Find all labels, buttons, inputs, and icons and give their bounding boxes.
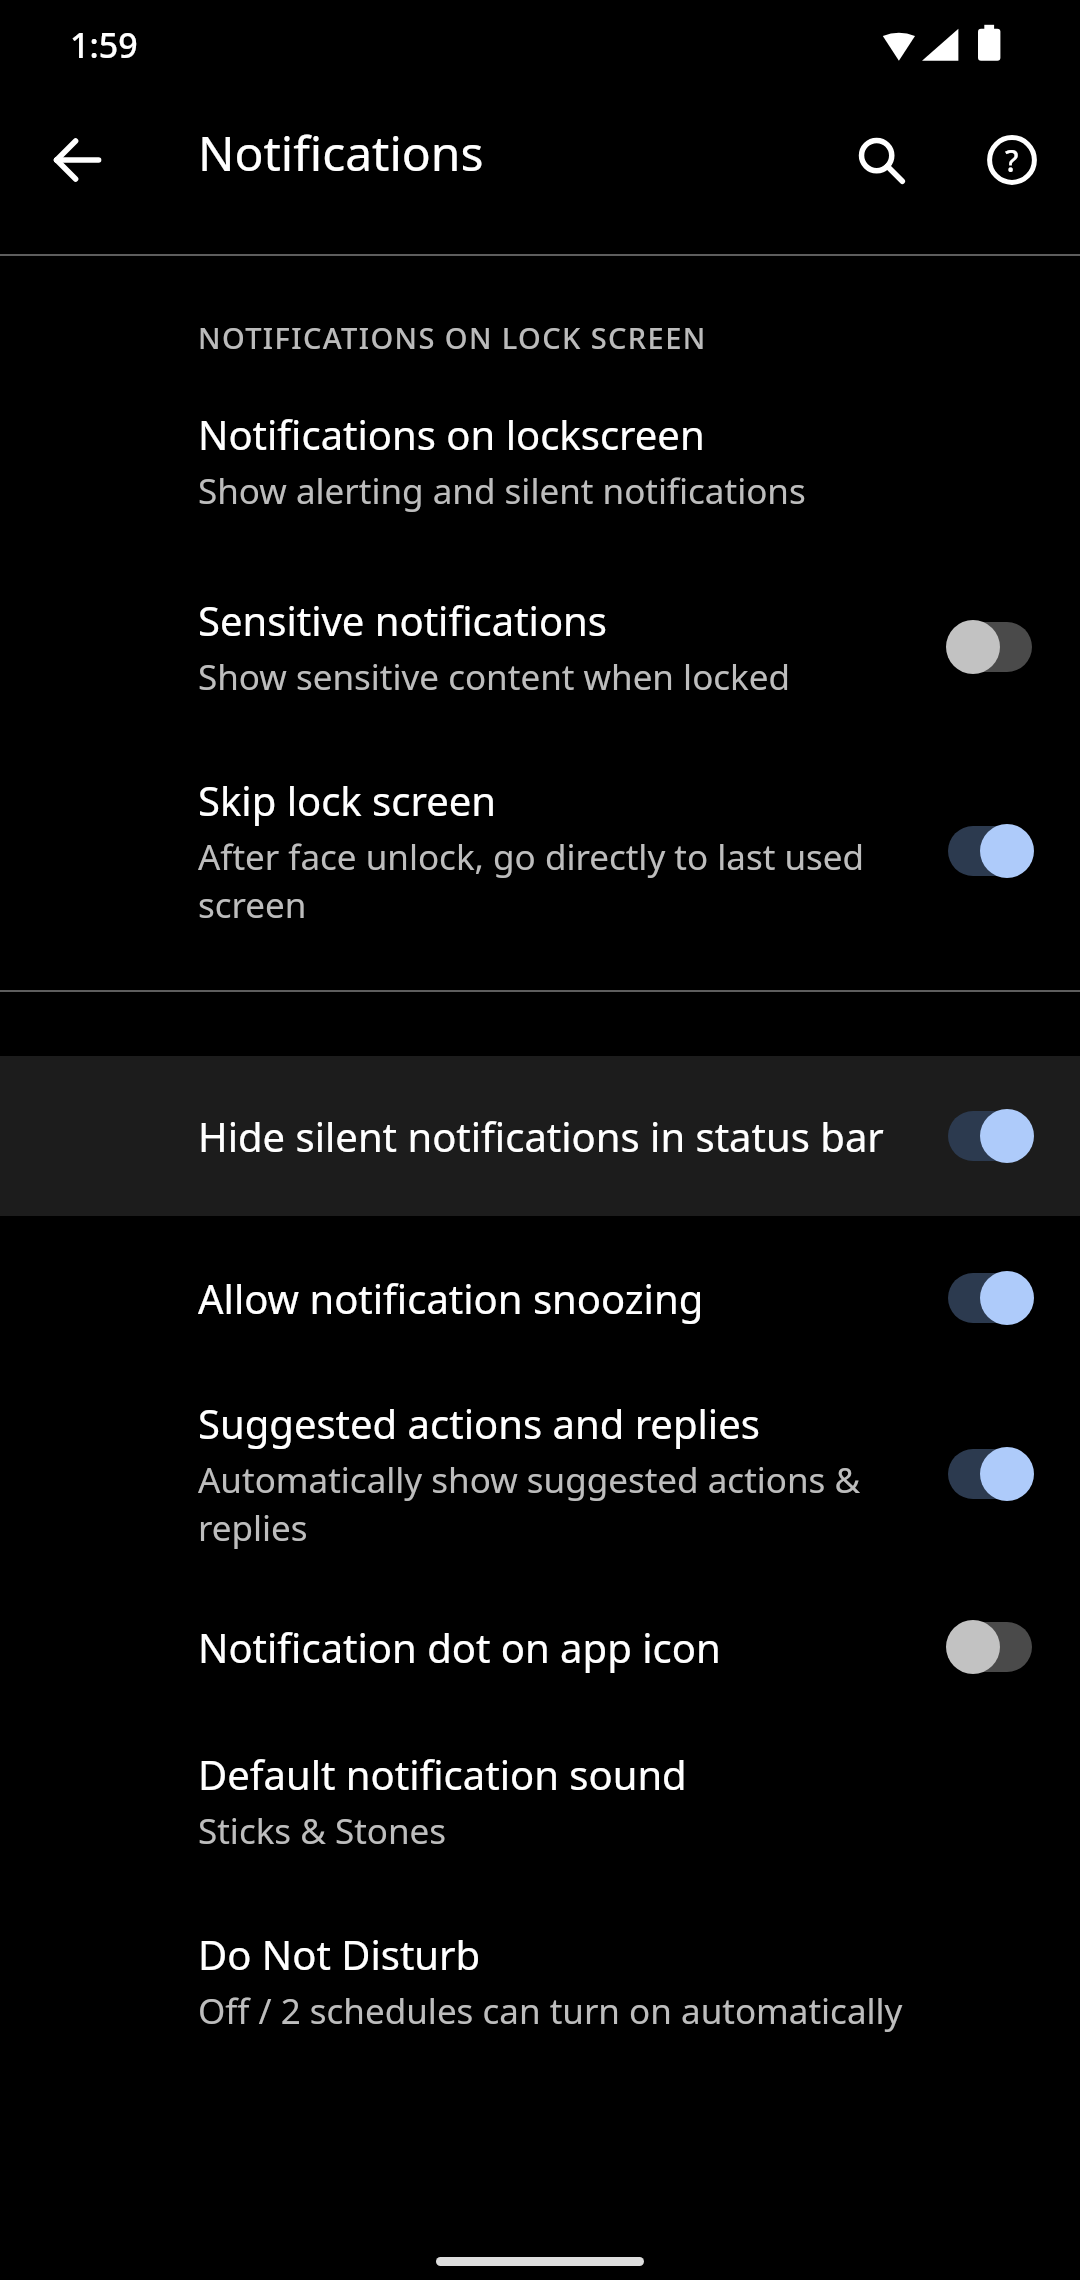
staticText: Allow notification snoozing: [198, 1271, 704, 1325]
staticText: NOTIFICATIONS ON LOCK SCREEN: [198, 318, 707, 357]
button[interactable]: Suggested actions and replies: [0, 1358, 1080, 1551]
staticText: 1:59: [70, 22, 138, 68]
staticText: Default notification sound: [198, 1747, 687, 1801]
button[interactable]: Do Not Disturb: [0, 1927, 1080, 2035]
staticText: Notification dot on app icon: [198, 1620, 721, 1674]
button[interactable]: Notifications on lockscreen: [0, 407, 1080, 515]
button[interactable]: Help: [984, 132, 1040, 188]
staticText: Show sensitive content when locked: [198, 653, 791, 701]
button[interactable]: Notification dot on app icon: [0, 1617, 1080, 1677]
staticText: Suggested actions and replies: [198, 1396, 760, 1450]
staticText: Skip lock screen: [198, 773, 497, 827]
staticText: Off / 2 schedules can turn on automatica…: [198, 1987, 903, 2035]
staticText: Sticks & Stones: [198, 1807, 447, 1855]
button[interactable]: Skip lock screen: [0, 773, 1080, 928]
button[interactable]: Sensitive notifications: [0, 593, 1080, 701]
staticText: Do Not Disturb: [198, 1927, 481, 1981]
button[interactable]: Hide silent notifications in status bar: [0, 1056, 1080, 1216]
staticText: Show alerting and silent notifications: [198, 467, 806, 515]
staticText: After face unlock, go directly to last u…: [198, 833, 916, 928]
staticText: ?: [1005, 140, 1019, 181]
button[interactable]: Default notification sound: [0, 1747, 1080, 1855]
button[interactable]: Allow notification snoozing: [0, 1216, 1080, 1358]
button[interactable]: Back: [47, 130, 107, 190]
staticText: Automatically show suggested actions & r…: [198, 1456, 916, 1551]
staticText: Hide silent notifications in status bar: [198, 1109, 884, 1163]
staticText: Notifications on lockscreen: [198, 407, 705, 461]
button[interactable]: Search: [852, 132, 908, 188]
staticText: Sensitive notifications: [198, 593, 607, 647]
staticText: Notifications: [198, 120, 484, 185]
